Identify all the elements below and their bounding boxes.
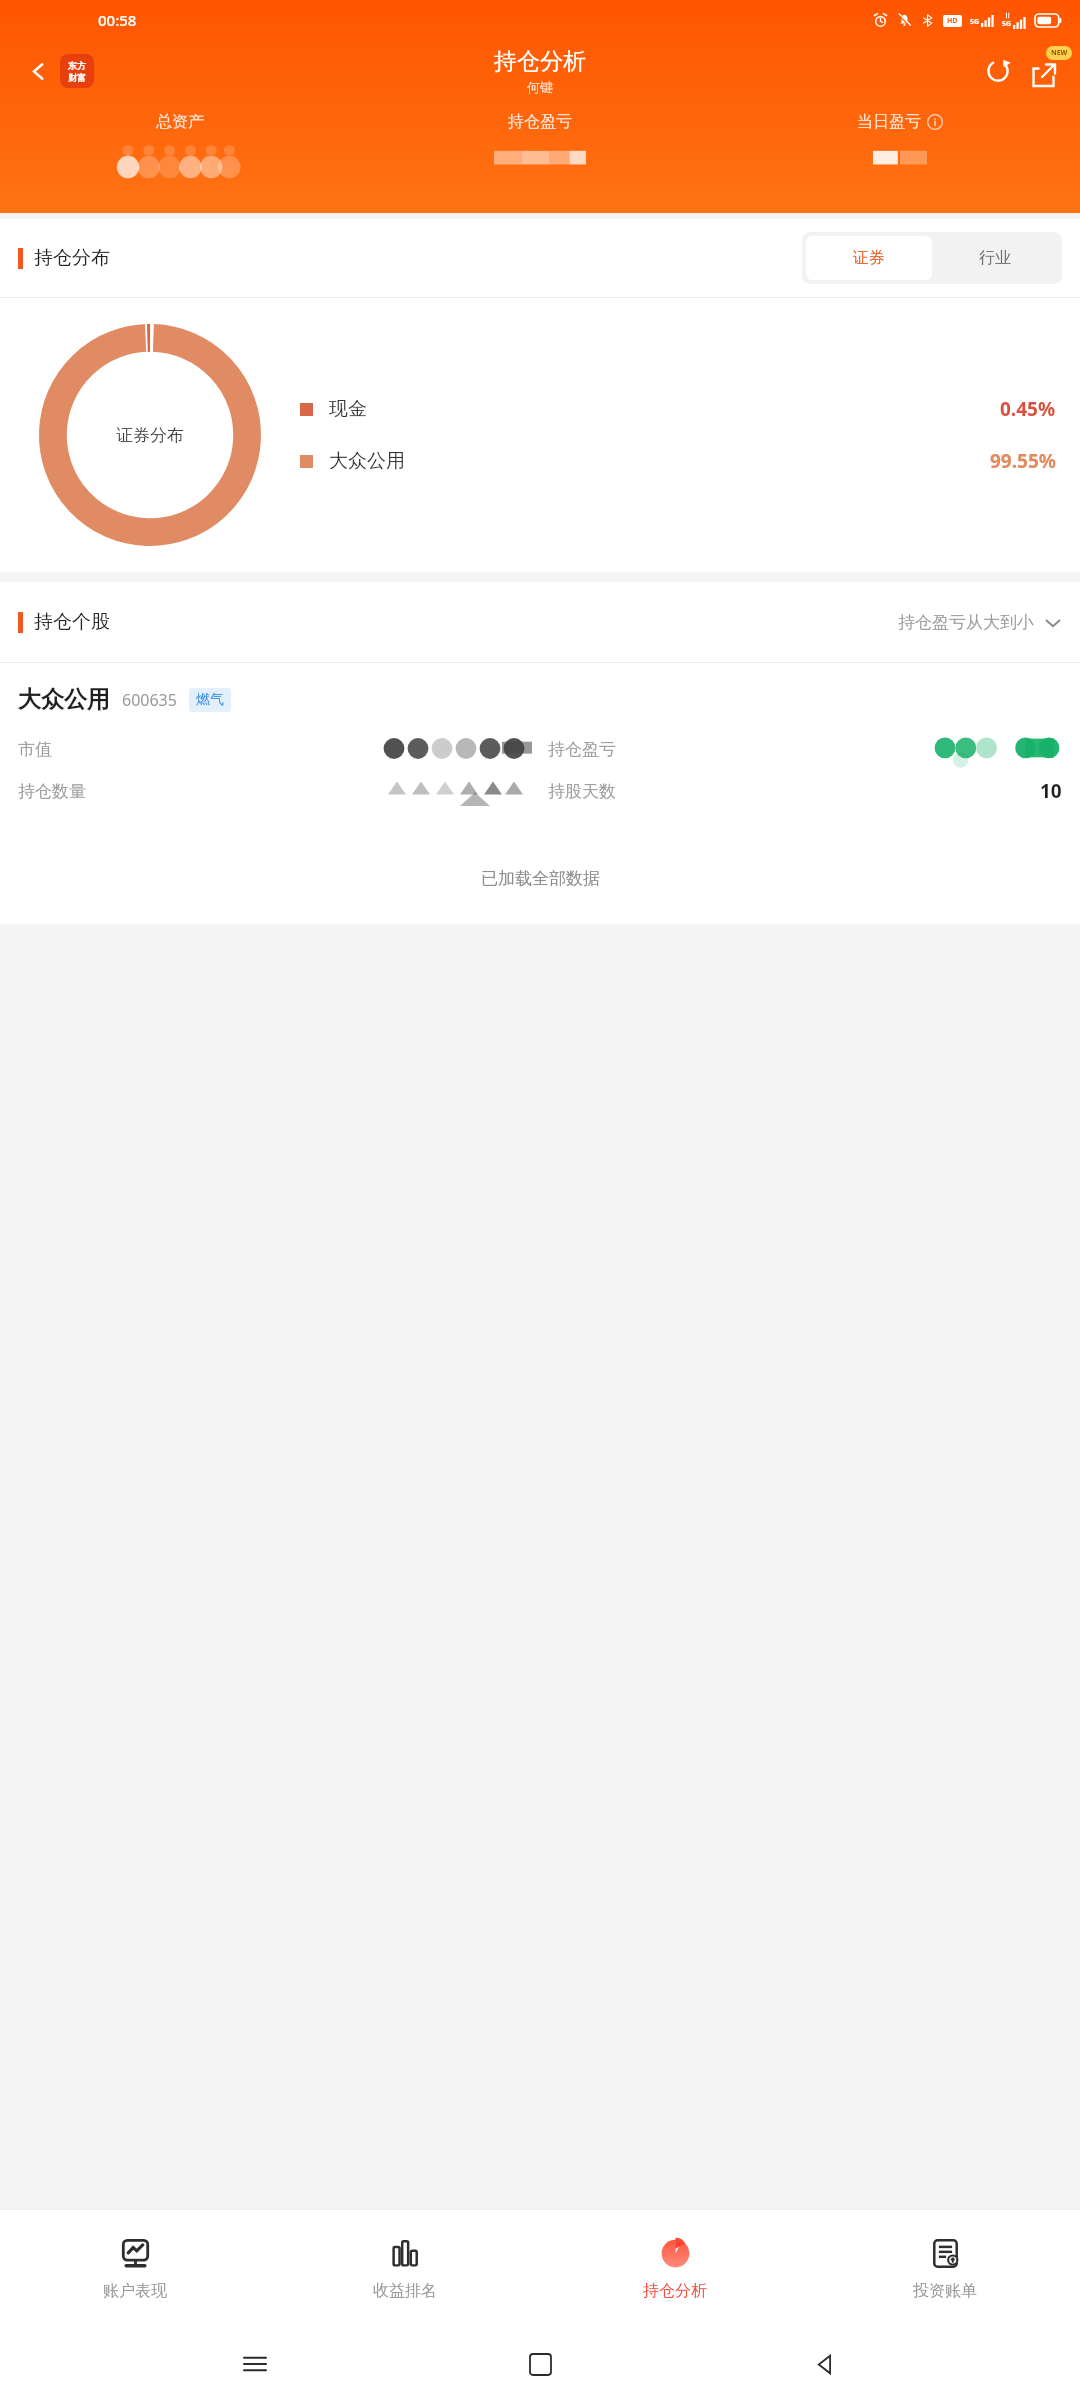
staticText: 99.55% xyxy=(990,448,1056,474)
staticText: 大众公用 xyxy=(329,449,405,473)
button[interactable]: Back xyxy=(16,49,60,93)
staticText: 00:58 xyxy=(98,10,137,30)
staticText: 市值 xyxy=(18,739,52,760)
staticText: 持仓盈亏 xyxy=(548,739,616,760)
staticText: 持仓盈亏从大到小 xyxy=(898,612,1034,633)
staticText: 600635 xyxy=(122,689,177,711)
button[interactable]: 大众公用 xyxy=(0,663,1080,832)
staticText: 持仓分布 xyxy=(34,246,110,270)
staticText: 持仓盈亏 xyxy=(508,112,572,132)
staticText: NEW xyxy=(1051,48,1068,58)
staticText: 证券 xyxy=(853,248,885,268)
button[interactable]: 投资账单 xyxy=(810,2210,1080,2328)
staticText: 燃气 xyxy=(196,691,224,709)
staticText: 现金 xyxy=(329,397,367,421)
staticText: HD xyxy=(947,16,958,26)
staticText: 行业 xyxy=(979,248,1011,268)
staticText: 当日盈亏 xyxy=(857,112,921,132)
button[interactable]: 收益排名 xyxy=(270,2210,540,2328)
staticText: 已加载全部数据 xyxy=(481,868,600,889)
staticText: 5G xyxy=(1002,19,1012,29)
button[interactable]: 东方 xyxy=(60,54,94,88)
staticText: 账户表现 xyxy=(103,2281,167,2301)
button[interactable]: 持仓盈亏从大到小 xyxy=(898,612,1062,633)
staticText: 大众公用 xyxy=(18,685,110,714)
button[interactable]: Menu xyxy=(225,2334,285,2394)
button[interactable]: 当日盈亏 xyxy=(720,112,1080,168)
staticText: 持仓个股 xyxy=(34,610,110,634)
button[interactable]: Refresh xyxy=(976,49,1020,93)
staticText: 0.45% xyxy=(1000,396,1056,422)
staticText: 总资产 xyxy=(156,112,204,132)
staticText: 何键 xyxy=(527,79,553,95)
button[interactable]: 总资产 xyxy=(0,112,360,180)
button[interactable]: 证券 xyxy=(806,236,932,280)
button[interactable]: 持仓盈亏 xyxy=(360,112,720,168)
staticText: 收益排名 xyxy=(373,2281,437,2301)
button[interactable]: Share xyxy=(1020,48,1066,94)
staticText: 证券分布 xyxy=(116,425,184,446)
staticText: 持仓数量 xyxy=(18,781,86,802)
staticText: 5G xyxy=(970,17,980,27)
staticText: 持仓分析 xyxy=(643,2281,707,2301)
staticText: 10 xyxy=(1040,778,1062,804)
staticText: 财富 xyxy=(68,72,86,83)
button[interactable]: 行业 xyxy=(932,236,1058,280)
button[interactable]: Back xyxy=(795,2334,855,2394)
staticText: 持仓分析 xyxy=(494,47,586,76)
staticText: 持股天数 xyxy=(548,781,616,802)
button[interactable]: 持仓分析 xyxy=(540,2210,810,2328)
staticText: 投资账单 xyxy=(913,2281,977,2301)
staticText: 东方 xyxy=(68,60,86,71)
button[interactable]: 账户表现 xyxy=(0,2210,270,2328)
button[interactable]: Home xyxy=(510,2334,570,2394)
